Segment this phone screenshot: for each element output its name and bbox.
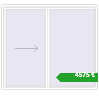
- other: Price 4575 euro: [75, 70, 95, 79]
- button[interactable]: [56, 73, 98, 82]
- button[interactable]: Price 4575 euro: [0, 0, 99, 99]
- staticText: 4575 €: [75, 70, 95, 79]
